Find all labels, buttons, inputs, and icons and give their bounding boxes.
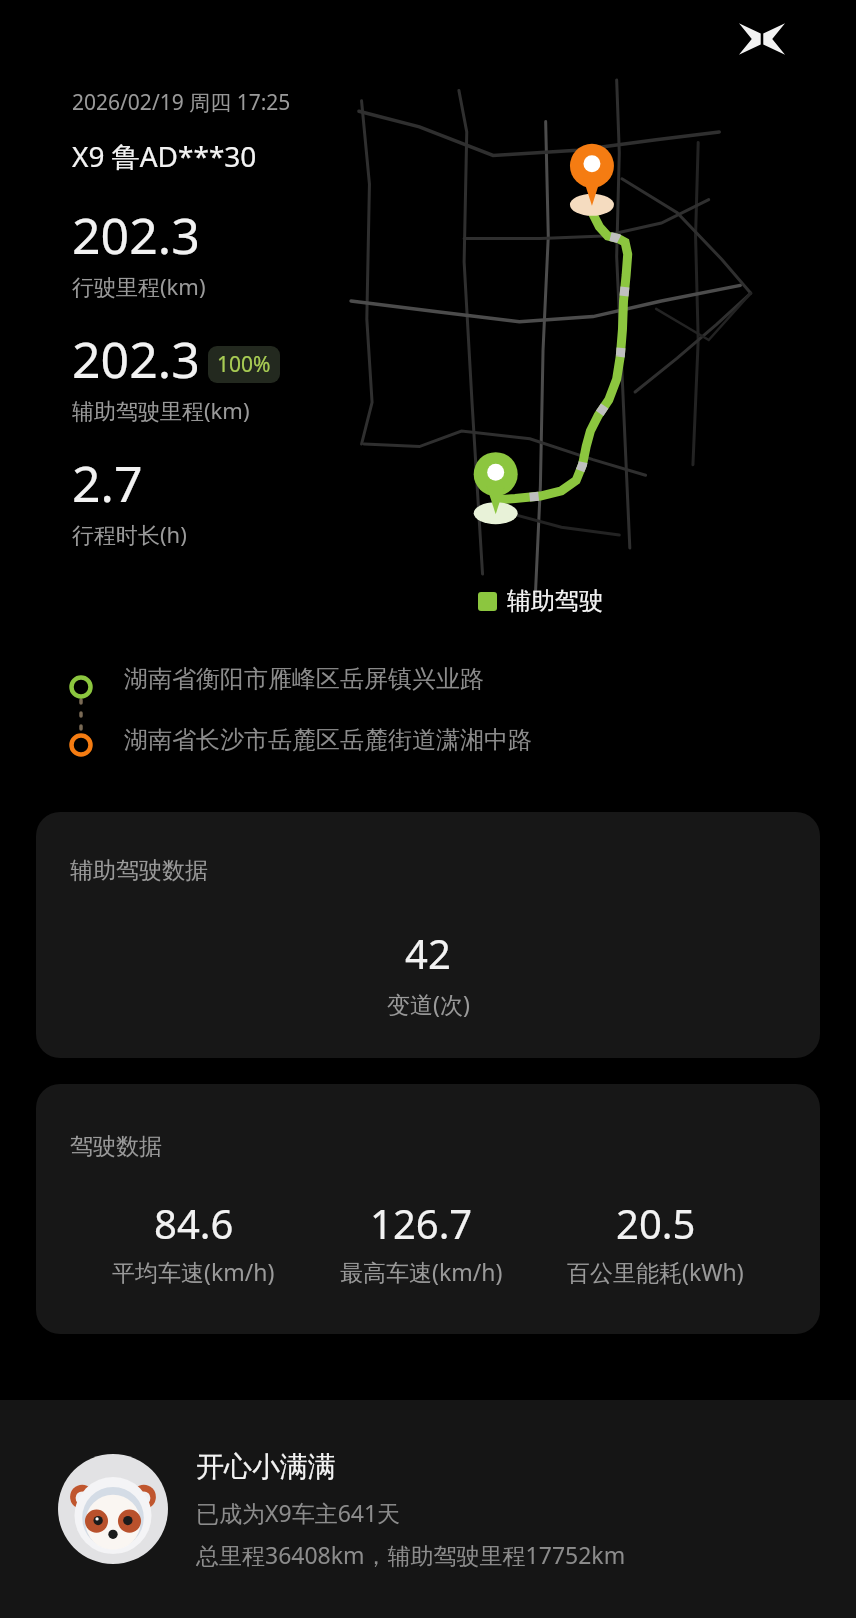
staticText: 辅助驾驶数据 [70,856,208,885]
staticText: 辅助驾驶 [507,586,603,616]
staticText: 2.7 [72,449,143,517]
button[interactable]: XPeng logo [730,16,794,62]
staticText: 100% [217,350,271,379]
staticText: 驾驶数据 [70,1132,162,1161]
staticText: 开心小满满 [196,1449,336,1484]
staticText: 2026/02/19 周四 17:25 [72,88,291,117]
staticText: 总里程36408km，辅助驾驶里程17752km [196,1539,626,1570]
staticText: 百公里能耗(kWh) [567,1256,744,1287]
staticText: 湖南省长沙市岳麓区岳麓街道潇湘中路 [124,725,532,755]
staticText: 202.3 [72,201,200,269]
button[interactable]: 驾驶数据 [36,1084,820,1334]
staticText: 126.7 [370,1196,473,1250]
button[interactable]: 辅助驾驶数据 [36,812,820,1058]
staticText: 变道(次) [387,988,470,1019]
staticText: 行程时长(h) [72,519,187,549]
staticText: 202.3 [72,325,200,393]
button[interactable]: 开心小满满 [0,1400,856,1618]
staticText: 湖南省衡阳市雁峰区岳屏镇兴业路 [124,664,484,694]
staticText: 行驶里程(km) [72,271,206,301]
staticText: 辅助驾驶里程(km) [72,395,250,425]
staticText: 已成为X9车主641天 [196,1497,401,1528]
staticText: 平均车速(km/h) [112,1256,275,1287]
staticText: 84.6 [154,1196,234,1250]
staticText: X9 鲁AD***30 [72,137,257,175]
staticText: 20.5 [616,1196,696,1250]
staticText: 最高车速(km/h) [340,1256,503,1287]
staticText: 42 [405,926,451,980]
